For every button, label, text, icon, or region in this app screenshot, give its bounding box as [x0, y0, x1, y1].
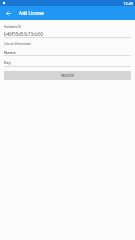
staticText: Course Information	[4, 42, 32, 46]
staticText: b46f55d53c73cb00	[4, 31, 43, 37]
staticText: Key	[4, 60, 12, 66]
staticText: Add License	[19, 10, 45, 16]
staticText: REGISTER	[61, 74, 74, 78]
button[interactable]: REGISTER	[4, 71, 131, 80]
staticText: Name	[4, 50, 16, 56]
staticText: 12:45	[123, 1, 134, 6]
button[interactable]: Back	[1, 6, 15, 20]
staticText: Hardware ID	[4, 25, 22, 29]
